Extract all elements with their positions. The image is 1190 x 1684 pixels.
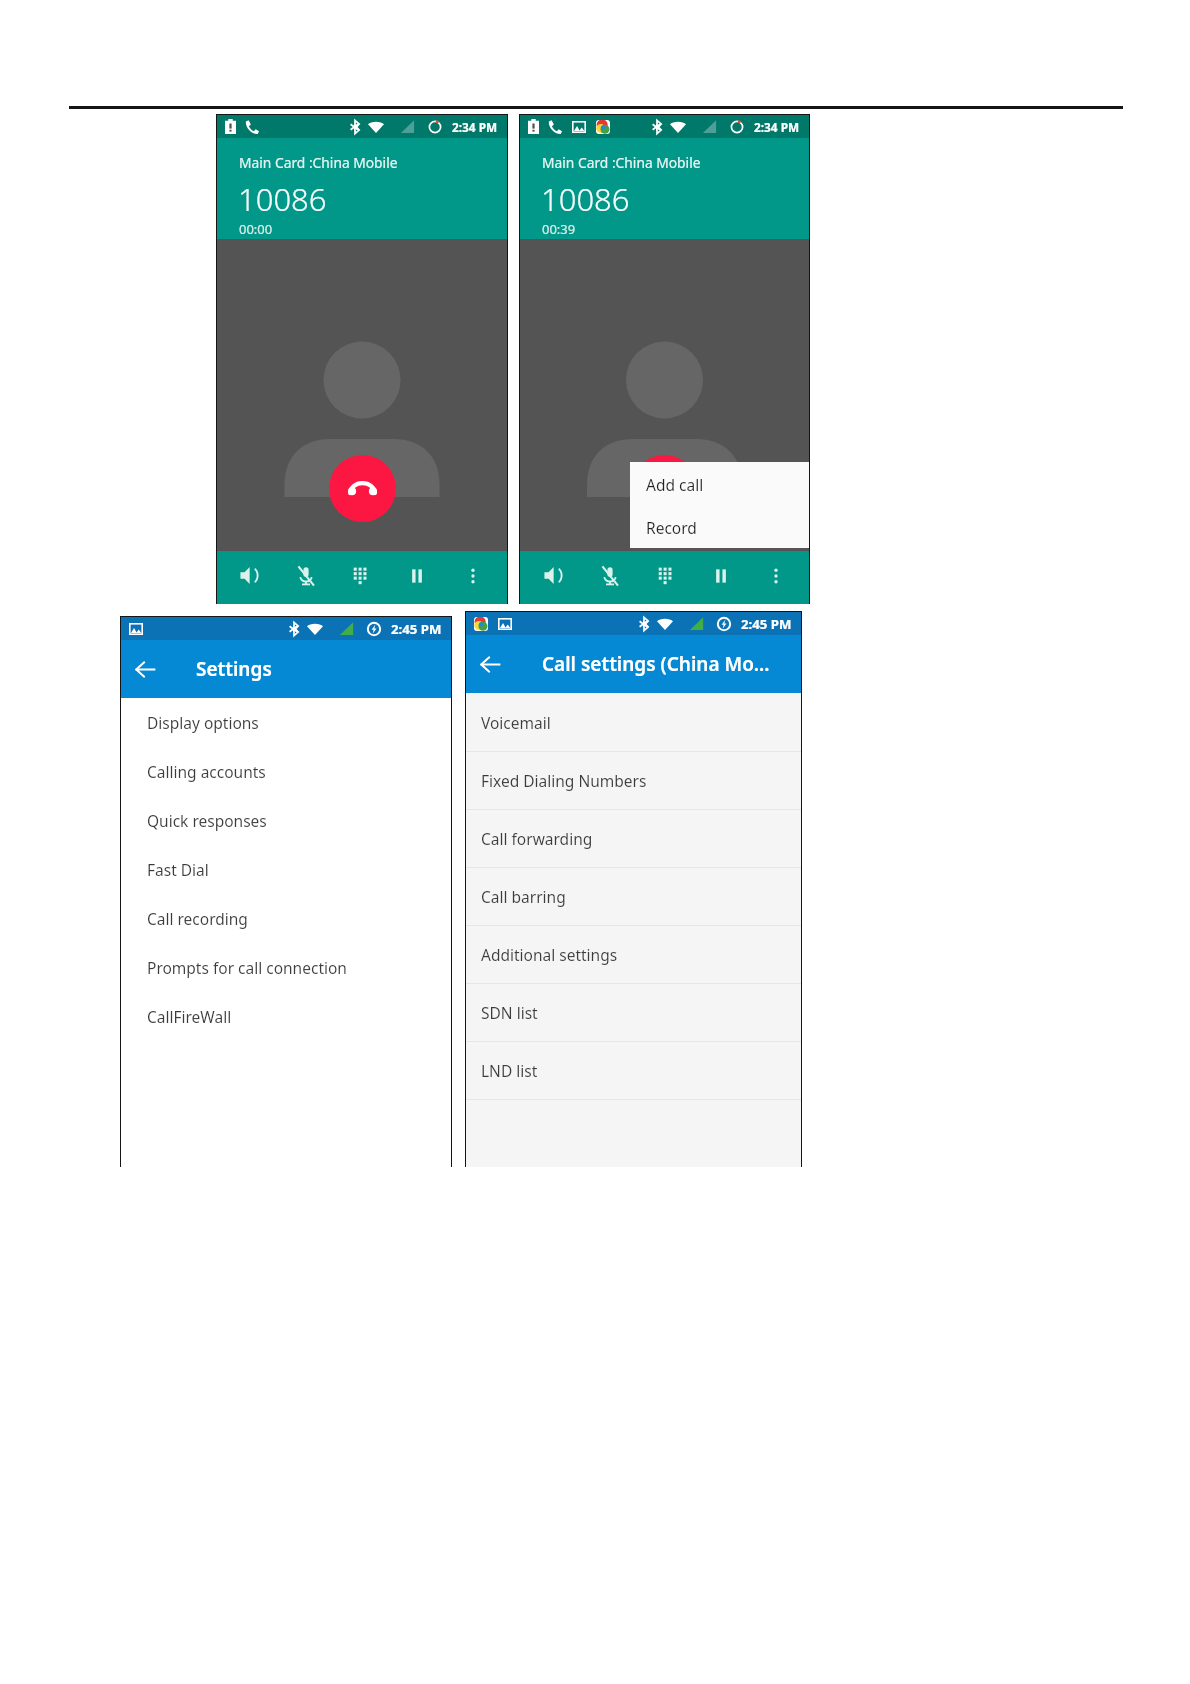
staticText: 10086 <box>541 178 630 220</box>
button[interactable]: Mute <box>582 551 638 604</box>
staticText: Call settings (China Mo… <box>542 651 770 677</box>
staticText: Fixed Dialing Numbers <box>481 770 647 791</box>
button[interactable]: Add call <box>630 463 809 506</box>
button[interactable]: SDN list <box>466 984 801 1041</box>
button[interactable]: Hold <box>693 551 748 604</box>
staticText: Quick responses <box>147 810 267 831</box>
staticText: Call recording <box>147 908 248 929</box>
button[interactable]: Mute <box>278 551 333 604</box>
button[interactable]: Call barring <box>466 868 801 925</box>
button[interactable]: Back <box>121 645 169 693</box>
staticText: Settings <box>196 656 272 682</box>
button[interactable]: More options <box>748 551 803 604</box>
button[interactable]: Speaker <box>526 551 582 604</box>
staticText: SDN list <box>481 1002 538 1023</box>
button[interactable]: Call recording <box>121 894 451 943</box>
staticText: 2:34 PM <box>754 119 800 135</box>
button[interactable]: LND list <box>466 1042 801 1099</box>
button[interactable]: Speaker <box>223 551 278 604</box>
staticText: Main Card :China Mobile <box>542 153 701 172</box>
button[interactable]: More options <box>445 551 501 604</box>
button[interactable]: End call <box>631 455 698 522</box>
button[interactable]: Fast Dial <box>121 845 451 894</box>
button[interactable]: Fixed Dialing Numbers <box>466 752 801 809</box>
button[interactable]: Keypad <box>333 551 389 604</box>
staticText: Call barring <box>481 886 566 907</box>
staticText: Calling accounts <box>147 761 266 782</box>
button[interactable]: Voicemail <box>466 694 801 751</box>
staticText: Display options <box>147 712 259 733</box>
staticText: Voicemail <box>481 712 551 733</box>
button[interactable]: CallFireWall <box>121 992 451 1041</box>
staticText: 2:34 PM <box>452 119 498 135</box>
staticText: Add call <box>646 474 704 495</box>
button[interactable]: Calling accounts <box>121 747 451 796</box>
button[interactable]: Hold <box>389 551 445 604</box>
button[interactable]: Back <box>466 640 514 688</box>
button[interactable]: Keypad <box>638 551 693 604</box>
staticText: 00:39 <box>542 220 576 238</box>
staticText: Prompts for call connection <box>147 957 347 978</box>
button[interactable]: Additional settings <box>466 926 801 983</box>
button[interactable]: Call forwarding <box>466 810 801 867</box>
button[interactable]: Quick responses <box>121 796 451 845</box>
button[interactable]: Record <box>630 506 809 549</box>
staticText: Additional settings <box>481 944 618 965</box>
button[interactable]: Prompts for call connection <box>121 943 451 992</box>
staticText: Fast Dial <box>147 859 209 880</box>
staticText: 2:45 PM <box>741 615 792 633</box>
button[interactable]: End call <box>329 455 396 522</box>
staticText: 10086 <box>238 178 327 220</box>
button[interactable]: Display options <box>121 698 451 747</box>
staticText: LND list <box>481 1060 538 1081</box>
staticText: Record <box>646 517 697 538</box>
staticText: 00:00 <box>239 220 273 238</box>
staticText: Call forwarding <box>481 828 593 849</box>
staticText: CallFireWall <box>147 1006 232 1027</box>
staticText: Main Card :China Mobile <box>239 153 398 172</box>
staticText: 2:45 PM <box>391 620 442 638</box>
